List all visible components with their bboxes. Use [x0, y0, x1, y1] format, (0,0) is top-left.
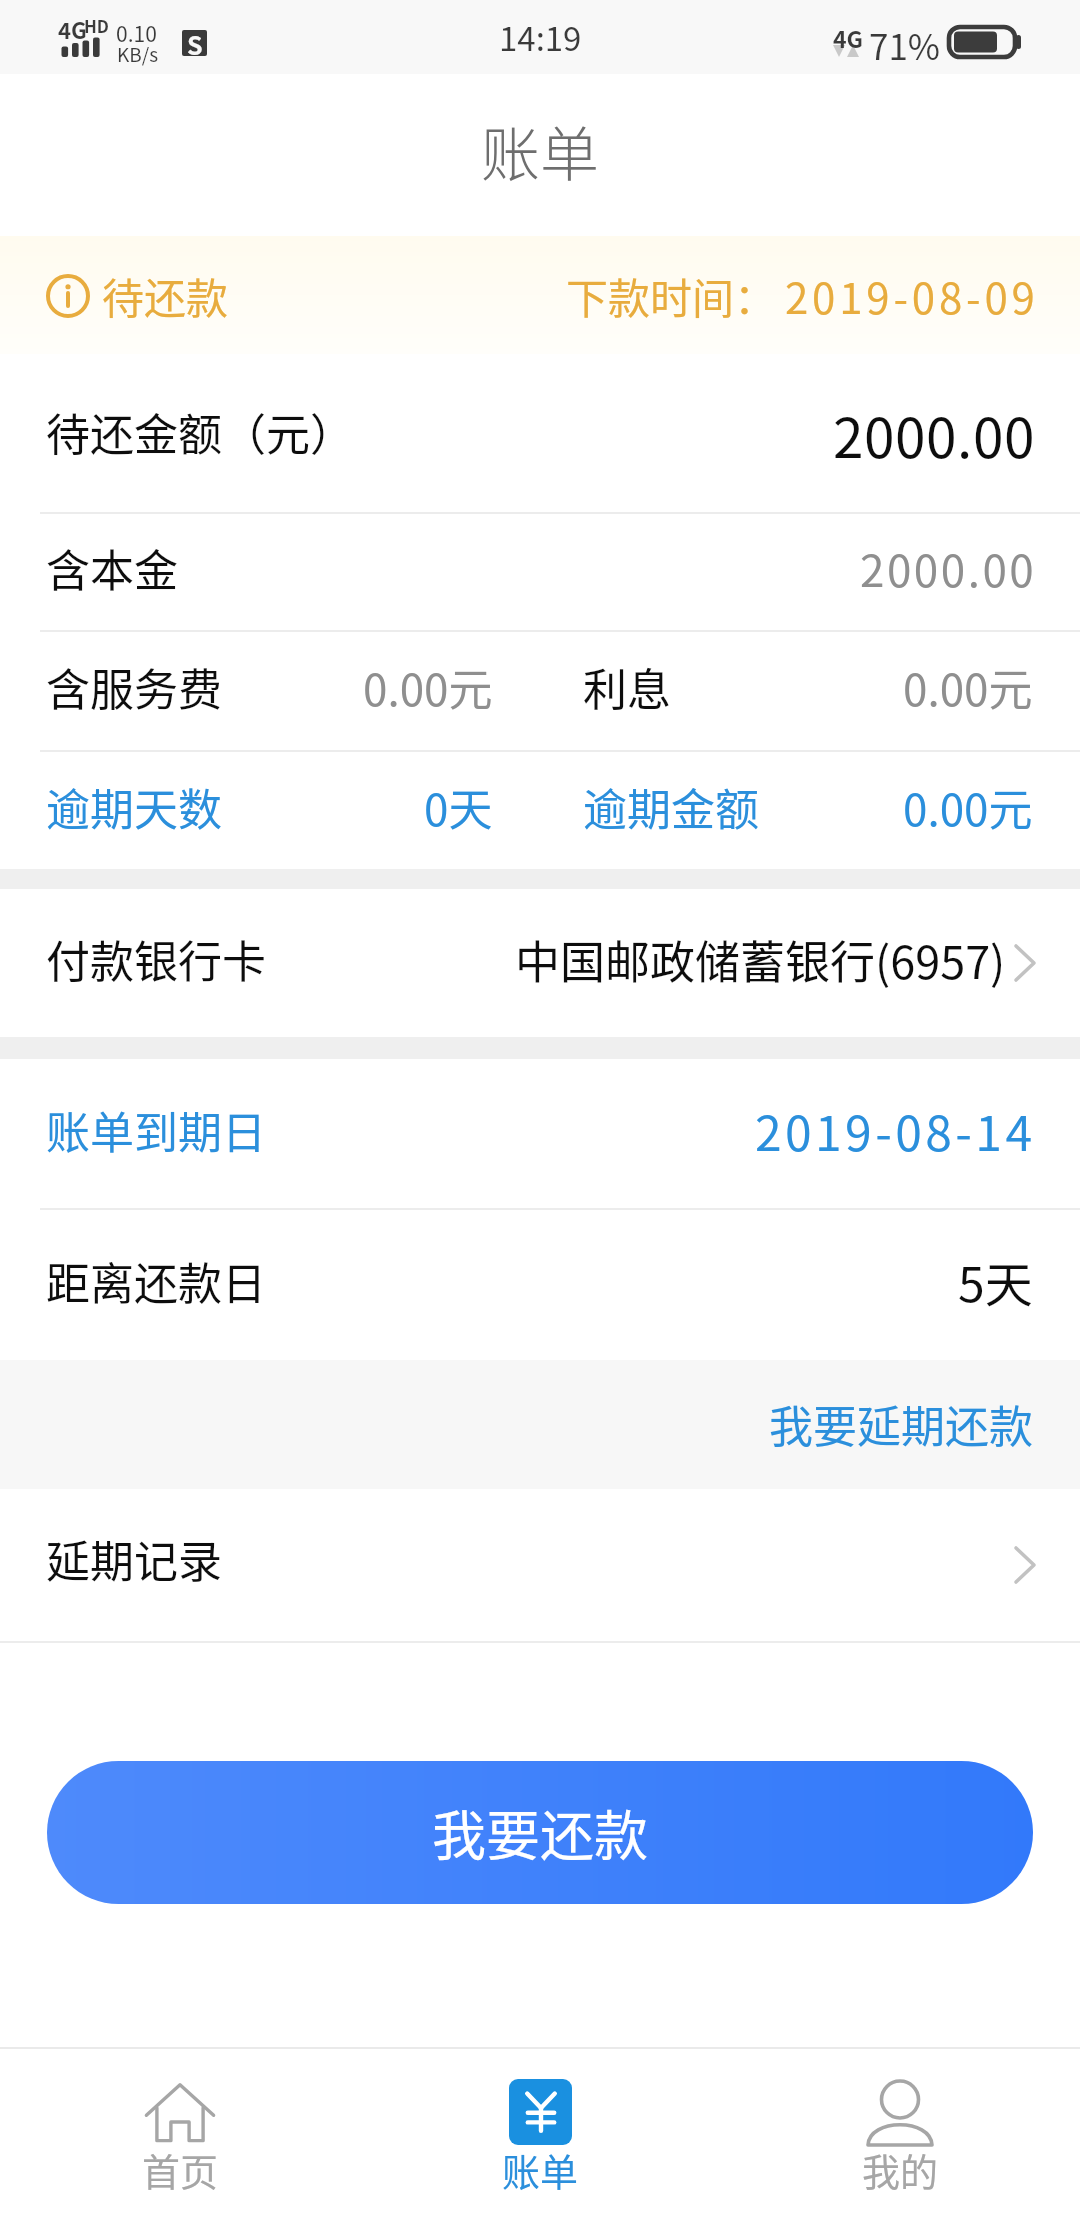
staticText: 中国邮政储蓄银行(6957) [515, 927, 1006, 992]
staticText: 账单到期日 [46, 1098, 266, 1162]
button[interactable]: 付款银行卡 中国邮政储蓄银行(6957) [0, 889, 1080, 1037]
staticText: 付款银行卡 [46, 927, 266, 991]
button[interactable]: 我的 Profile [720, 2049, 1080, 2214]
staticText: 0天 [424, 775, 493, 839]
staticText: 14:19 [499, 13, 582, 61]
staticText: 0.00元 [903, 775, 1033, 839]
staticText: 账单 [502, 2142, 579, 2197]
staticText: 4G [58, 13, 87, 45]
button[interactable]: 首页 Home [0, 2049, 360, 2214]
button[interactable]: 我要还款 [47, 1761, 1033, 1904]
staticText: 逾期天数 [46, 775, 222, 839]
staticText: 距离还款日 [46, 1249, 266, 1313]
staticText: 0.00元 [903, 655, 1033, 719]
staticText: 首页 [142, 2142, 219, 2197]
staticText: 下款时间： [566, 265, 777, 326]
staticText: 71% [869, 19, 941, 70]
staticText: 5天 [958, 1246, 1033, 1316]
button[interactable]: 我要延期还款 [739, 1360, 1080, 1489]
staticText: 含服务费 [46, 655, 222, 719]
staticText: 我要还款 [432, 1793, 648, 1871]
staticText: 账单 [481, 108, 600, 193]
staticText: 4G [833, 21, 864, 54]
staticText: 2019-08-09 [785, 265, 1039, 326]
staticText: HD [84, 13, 110, 38]
staticText: 我的 [862, 2142, 939, 2197]
staticText: KB/s [117, 40, 159, 68]
staticText: 2000.00 [833, 394, 1035, 474]
staticText: 待还金额（元） [46, 400, 354, 464]
staticText: 2000.00 [860, 536, 1037, 600]
staticText: S [187, 26, 203, 62]
staticText: 0.00元 [363, 655, 493, 719]
staticText: 逾期金额 [583, 775, 759, 839]
staticText: 利息 [583, 655, 671, 719]
staticText: 延期记录 [46, 1527, 222, 1591]
staticText: 2019-08-14 [755, 1095, 1036, 1165]
staticText: 待还款 [102, 265, 229, 326]
staticText: 0.10 [116, 18, 157, 48]
button[interactable]: 延期记录 [0, 1489, 1080, 1641]
button[interactable]: 账单 Bill [360, 2049, 720, 2214]
staticText: 我要延期还款 [769, 1392, 1033, 1456]
staticText: 含本金 [46, 536, 178, 600]
